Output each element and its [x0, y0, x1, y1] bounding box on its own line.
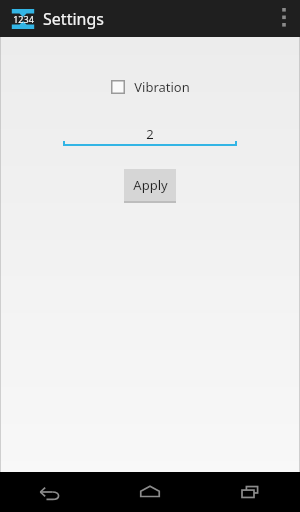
- button[interactable]: 2: [63, 123, 237, 153]
- button[interactable]: Recents: [200, 472, 300, 512]
- button[interactable]: Apply: [124, 169, 176, 203]
- button[interactable]: Back: [0, 472, 100, 512]
- staticText: 1234: [13, 13, 34, 25]
- staticText: Vibration: [134, 78, 190, 96]
- button[interactable]: Vibration: [107, 75, 194, 99]
- staticText: Apply: [133, 176, 168, 194]
- button[interactable]: More options: [268, 0, 300, 37]
- staticText: 2: [146, 125, 154, 143]
- button[interactable]: Up: [8, 5, 38, 33]
- button[interactable]: Home: [100, 472, 200, 512]
- staticText: Settings: [43, 8, 104, 30]
